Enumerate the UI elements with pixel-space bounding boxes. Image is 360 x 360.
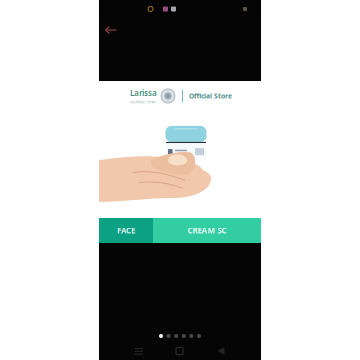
button[interactable]: Recent apps bbox=[135, 347, 142, 355]
button[interactable]: Back bbox=[99, 14, 122, 40]
button[interactable]: Back bbox=[217, 347, 223, 355]
button[interactable]: Home bbox=[176, 347, 183, 354]
staticText: CREAM SC bbox=[187, 225, 226, 236]
staticText: aesthetic center bbox=[130, 99, 157, 104]
button[interactable]: FACE bbox=[99, 218, 153, 243]
button[interactable]: CREAM SC bbox=[153, 218, 261, 243]
staticText: FACE bbox=[117, 225, 135, 236]
staticText: Official Store bbox=[189, 92, 232, 100]
staticText: Larissa bbox=[130, 87, 157, 98]
